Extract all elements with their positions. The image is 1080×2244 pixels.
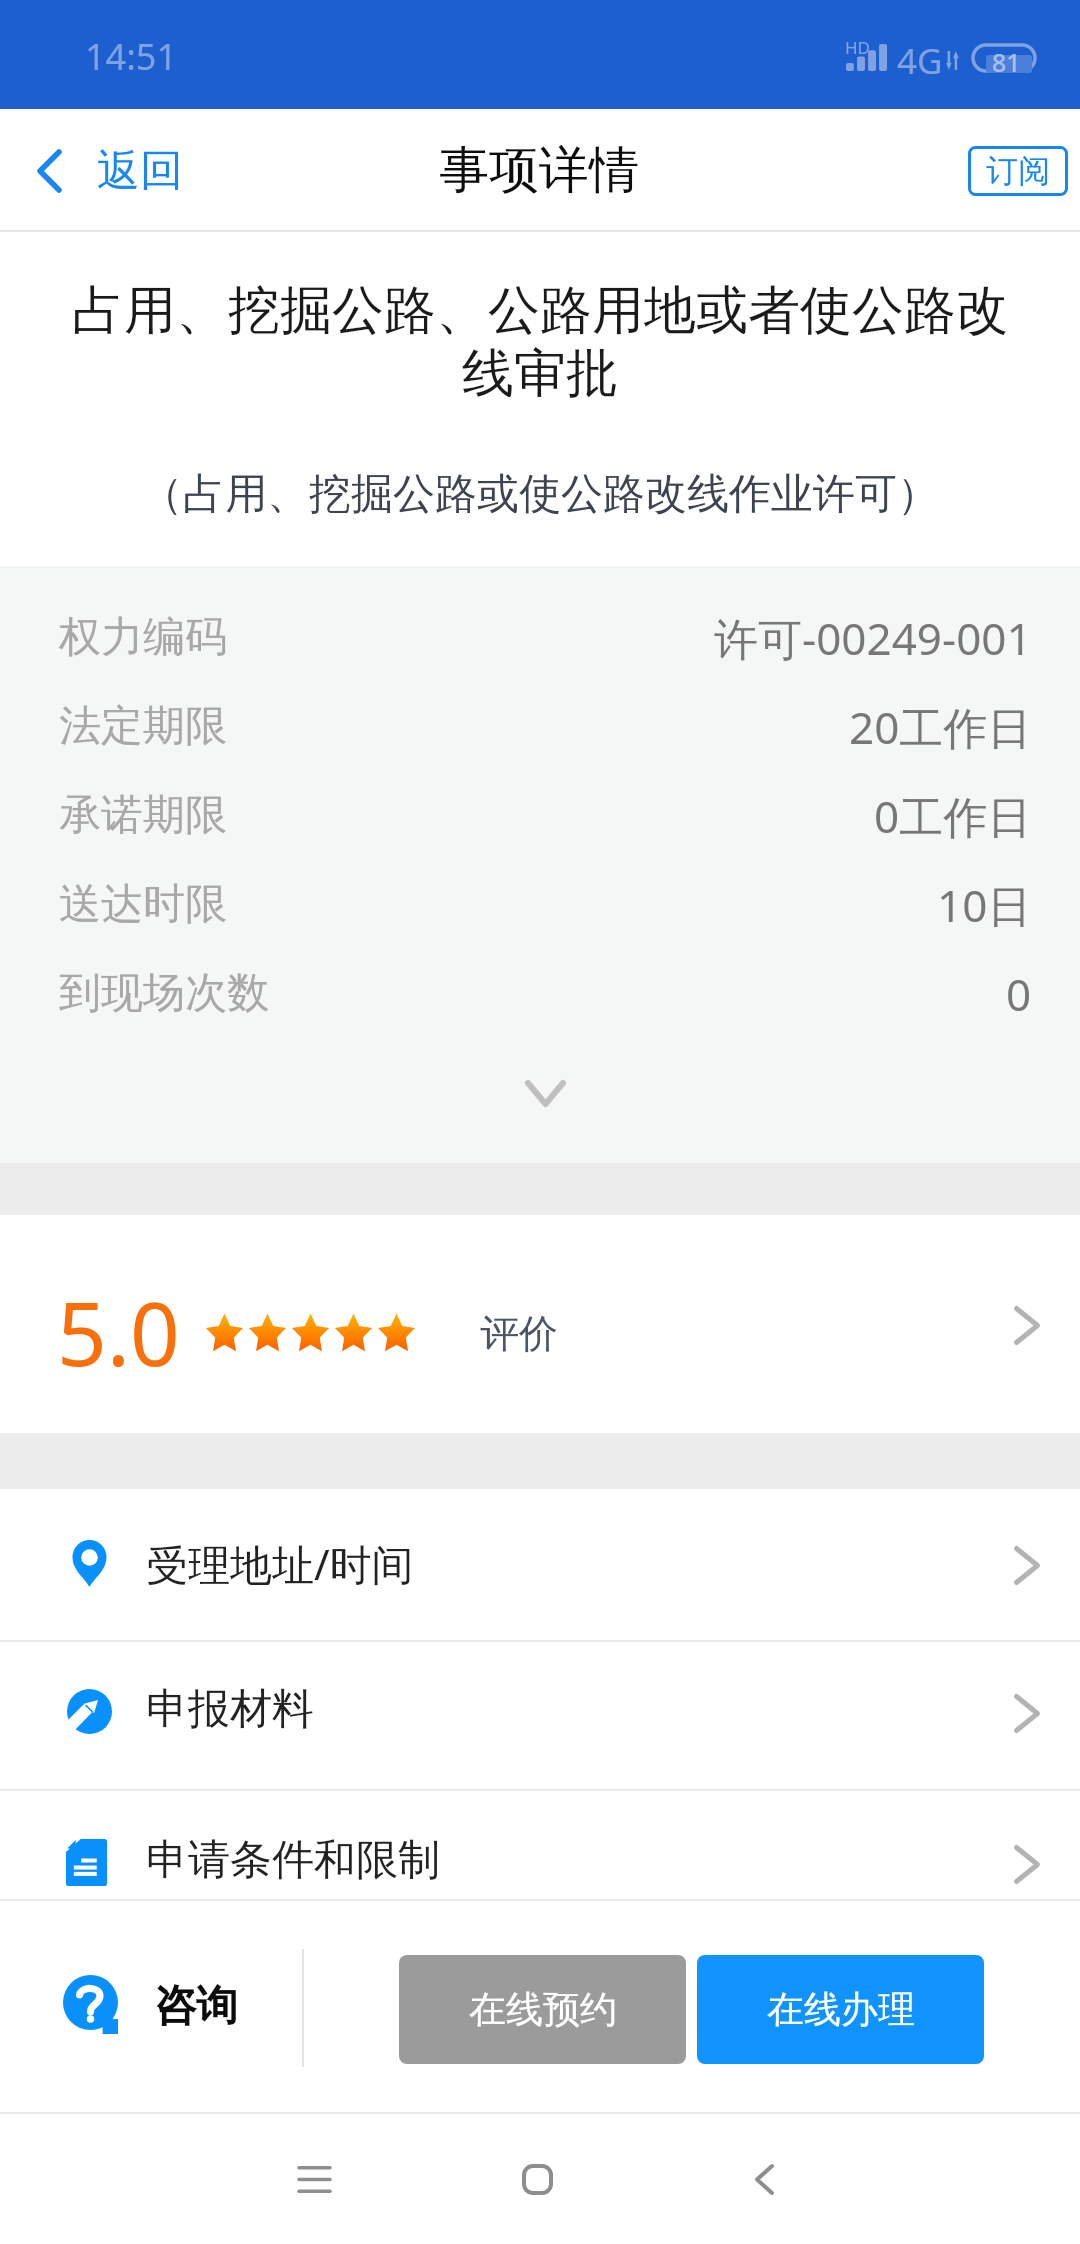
- button[interactable]: 受理地址/时间: [0, 1489, 1080, 1640]
- staticText: 在线办理: [767, 1986, 915, 2033]
- staticText: （占用、挖掘公路或使公路改线作业许可）: [60, 468, 1020, 521]
- button[interactable]: 5.0: [0, 1215, 1080, 1433]
- staticText: 81: [992, 45, 1021, 75]
- staticText: 14:51: [85, 32, 178, 81]
- staticText: 占用、挖掘公路、公路用地或者使公路改线审批: [60, 278, 1020, 406]
- staticText: 10日: [937, 875, 1032, 935]
- button[interactable]: 返回: [38, 109, 183, 232]
- button[interactable]: Home: [477, 2119, 597, 2239]
- staticText: 受理地址/时间: [146, 1535, 414, 1592]
- staticText: 20工作日: [849, 697, 1032, 757]
- staticText: 事项详情: [439, 139, 639, 202]
- staticText: 评价: [480, 1309, 558, 1358]
- button[interactable]: 咨询: [0, 1901, 302, 2114]
- staticText: 送达时限: [59, 878, 227, 931]
- button[interactable]: Back: [704, 2119, 824, 2239]
- staticText: 咨询: [154, 1980, 238, 2033]
- staticText: 0: [1006, 964, 1032, 1024]
- button[interactable]: Recent apps: [254, 2119, 374, 2239]
- button[interactable]: 在线办理: [697, 1955, 984, 2064]
- staticText: 承诺期限: [59, 789, 227, 842]
- staticText: 到现场次数: [59, 967, 269, 1020]
- staticText: 许可-00249-001: [714, 608, 1032, 668]
- staticText: 5.0: [57, 1273, 180, 1391]
- staticText: 法定期限: [59, 700, 227, 753]
- staticText: 返回: [97, 144, 183, 198]
- staticText: 0工作日: [874, 786, 1032, 846]
- staticText: 4G: [897, 37, 943, 85]
- button[interactable]: 申请条件和限制: [0, 1791, 1080, 1899]
- staticText: 订阅: [986, 151, 1050, 191]
- staticText: 申报材料: [146, 1683, 314, 1736]
- button[interactable]: 在线预约: [399, 1955, 686, 2064]
- button[interactable]: 订阅: [968, 146, 1068, 196]
- staticText: HD: [845, 36, 871, 59]
- staticText: 权力编码: [59, 611, 227, 664]
- button[interactable]: 申报材料: [0, 1642, 1080, 1789]
- staticText: 申请条件和限制: [146, 1834, 440, 1887]
- staticText: 在线预约: [469, 1986, 617, 2033]
